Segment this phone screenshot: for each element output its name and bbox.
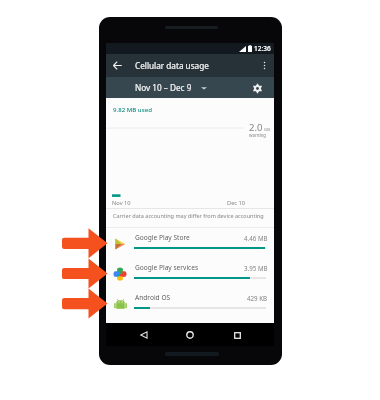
button[interactable]: Google Play services [106,258,274,288]
button[interactable]: Home [180,325,200,345]
button[interactable]: Android OS [106,288,274,318]
staticText: Carrier data accounting may differ from … [113,212,264,219]
staticText: 12:36 [254,44,271,53]
staticText: Nov 10 – Dec 9 [135,82,192,93]
button[interactable]: Back [133,325,153,345]
button[interactable]: Google Play Store [106,228,274,258]
button[interactable]: Navigate up [106,54,128,77]
staticText: 429 KB [247,294,268,302]
button[interactable]: Settings [248,79,266,97]
staticText: Android OS [135,293,171,302]
staticText: 3.95 MB [244,264,268,272]
staticText: Google Play services [135,263,199,272]
staticText: 2.0 [249,121,263,134]
staticText: Cellular data usage [135,60,209,71]
staticText: 4.46 MB [244,234,268,242]
staticText: Dec 10 [227,199,246,207]
staticText: Nov 10 [112,199,131,207]
button[interactable]: Recents [227,325,247,345]
staticText: warning [249,132,266,138]
button[interactable]: More options [254,54,274,77]
button[interactable]: Nov 10 – Dec 9 [135,79,207,96]
staticText: 9.82 MB used [113,105,152,113]
staticText: Google Play Store [135,233,190,242]
staticText: GB [263,127,270,133]
